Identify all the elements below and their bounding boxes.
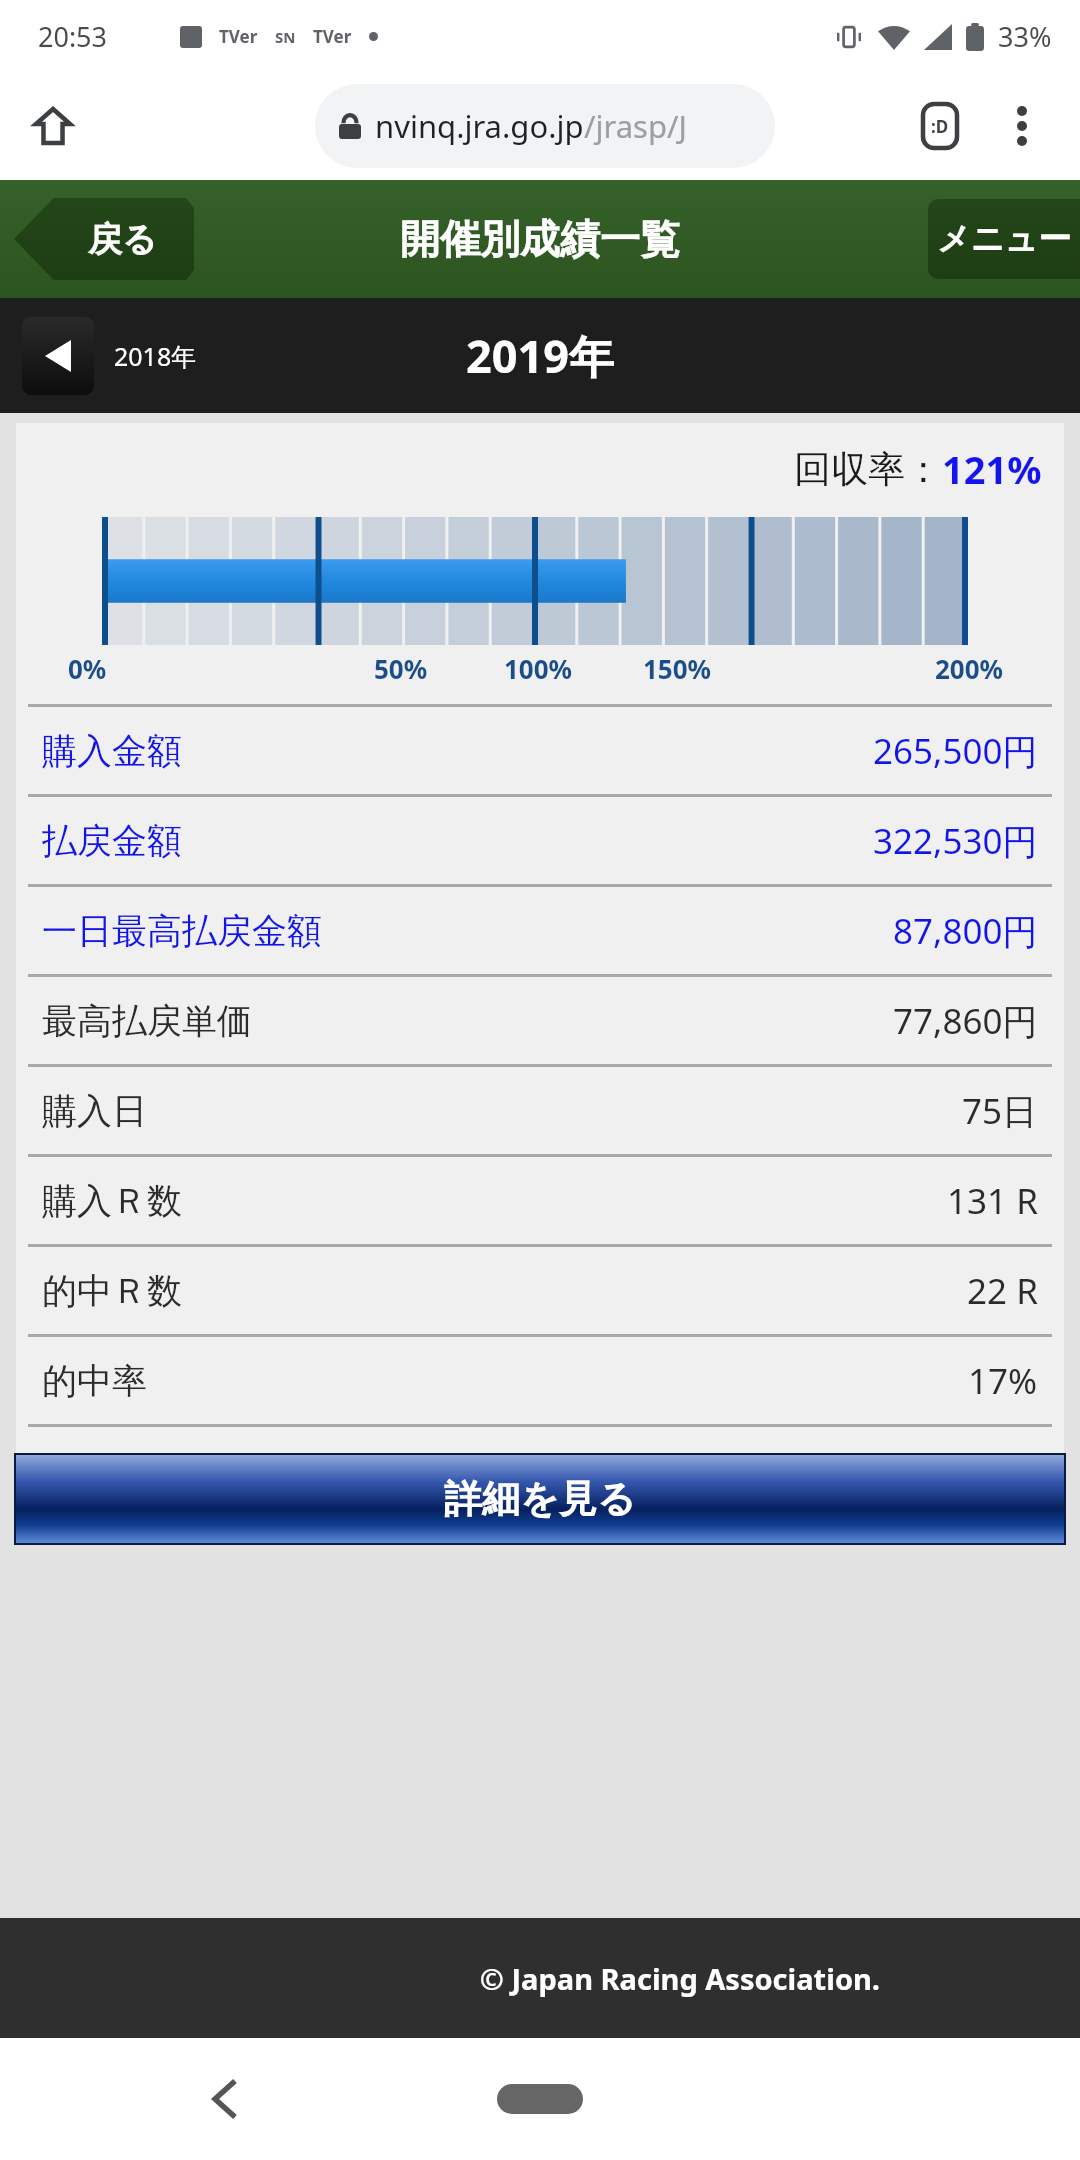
staticText: 0% xyxy=(68,651,107,686)
staticText: 戻る xyxy=(88,218,157,261)
staticText: 的中Ｒ数 xyxy=(42,1269,967,1313)
button[interactable]: 購入日 xyxy=(16,1067,1064,1154)
button[interactable]: 的中Ｒ数 xyxy=(16,1247,1064,1334)
button[interactable]: 的中率 xyxy=(16,1337,1064,1424)
button[interactable]: 払戻金額 xyxy=(16,797,1064,884)
staticText: 131 R xyxy=(947,1177,1038,1225)
staticText: 回収率： xyxy=(794,446,942,493)
button[interactable]: 最高払戻単価 xyxy=(16,977,1064,1064)
staticText: 詳細を見る xyxy=(444,1475,636,1523)
staticText: 33% xyxy=(998,18,1052,55)
staticText: 200% xyxy=(935,651,1004,686)
staticText: 2018年 xyxy=(114,339,197,373)
staticText: /jrasp/J xyxy=(584,105,688,147)
staticText: © Japan Racing Association. xyxy=(479,1959,880,1998)
button[interactable]: 購入金額 xyxy=(16,707,1064,794)
staticText: 77,860円 xyxy=(893,997,1038,1045)
button[interactable]: メニュー xyxy=(928,199,1080,279)
button[interactable]: Back xyxy=(185,2059,265,2139)
button[interactable]: 戻る xyxy=(14,198,194,280)
staticText: 265,500円 xyxy=(873,727,1038,775)
staticText: 開催別成績一覧 xyxy=(400,214,680,264)
staticText: 150% xyxy=(643,651,712,686)
button[interactable]: More options xyxy=(994,98,1050,154)
staticText: 22 R xyxy=(967,1267,1038,1315)
staticText: 購入Ｒ数 xyxy=(42,1179,947,1223)
staticText: nvinq.jra.go.jp xyxy=(375,105,584,147)
staticText: 100% xyxy=(504,651,573,686)
staticText: TVer xyxy=(313,25,352,48)
staticText: 20:53 xyxy=(38,18,108,55)
staticText: メニュー xyxy=(937,218,1072,260)
button[interactable]: Home xyxy=(497,2084,583,2114)
staticText: 購入日 xyxy=(42,1089,962,1133)
button[interactable]: 2018年 xyxy=(22,317,197,395)
staticText: 最高払戻単価 xyxy=(42,999,893,1043)
button[interactable]: Home xyxy=(22,95,84,157)
staticText: 購入金額 xyxy=(42,729,873,773)
staticText: TVer xyxy=(219,25,258,48)
staticText: 75日 xyxy=(962,1087,1038,1135)
staticText: 121% xyxy=(942,443,1042,495)
staticText: 的中率 xyxy=(42,1359,968,1403)
staticText: 一日最高払戻金額 xyxy=(42,909,893,953)
button[interactable]: 詳細を見る xyxy=(16,1455,1064,1543)
button[interactable]: 一日最高払戻金額 xyxy=(16,887,1064,974)
staticText: 50% xyxy=(374,651,428,686)
staticText: 322,530円 xyxy=(873,817,1038,865)
staticText: 87,800円 xyxy=(893,907,1038,955)
button[interactable]: nvinq.jra.go.jp xyxy=(315,84,775,168)
button[interactable]: 購入Ｒ数 xyxy=(16,1157,1064,1244)
staticText: 17% xyxy=(968,1357,1038,1405)
staticText: 2019年 xyxy=(466,325,614,386)
staticText: 払戻金額 xyxy=(42,819,873,863)
staticText: :D xyxy=(931,115,949,138)
staticText: SN xyxy=(275,27,296,47)
button[interactable]: Profile xyxy=(912,98,968,154)
